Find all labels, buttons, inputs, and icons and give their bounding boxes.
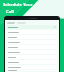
button[interactable] <box>7 30 57 34</box>
staticText: Schedule Your <box>3 2 33 8</box>
button[interactable] <box>7 70 57 71</box>
button[interactable] <box>7 45 57 49</box>
other: Selected time slot <box>54 26 56 28</box>
button[interactable]: Selected time slot <box>7 25 57 29</box>
button[interactable] <box>7 35 57 39</box>
button[interactable] <box>7 50 57 54</box>
button[interactable] <box>7 60 57 64</box>
button[interactable] <box>7 65 57 69</box>
button[interactable] <box>7 55 57 59</box>
button[interactable] <box>7 21 57 24</box>
button[interactable] <box>7 40 57 44</box>
staticText: Call <box>6 9 14 15</box>
